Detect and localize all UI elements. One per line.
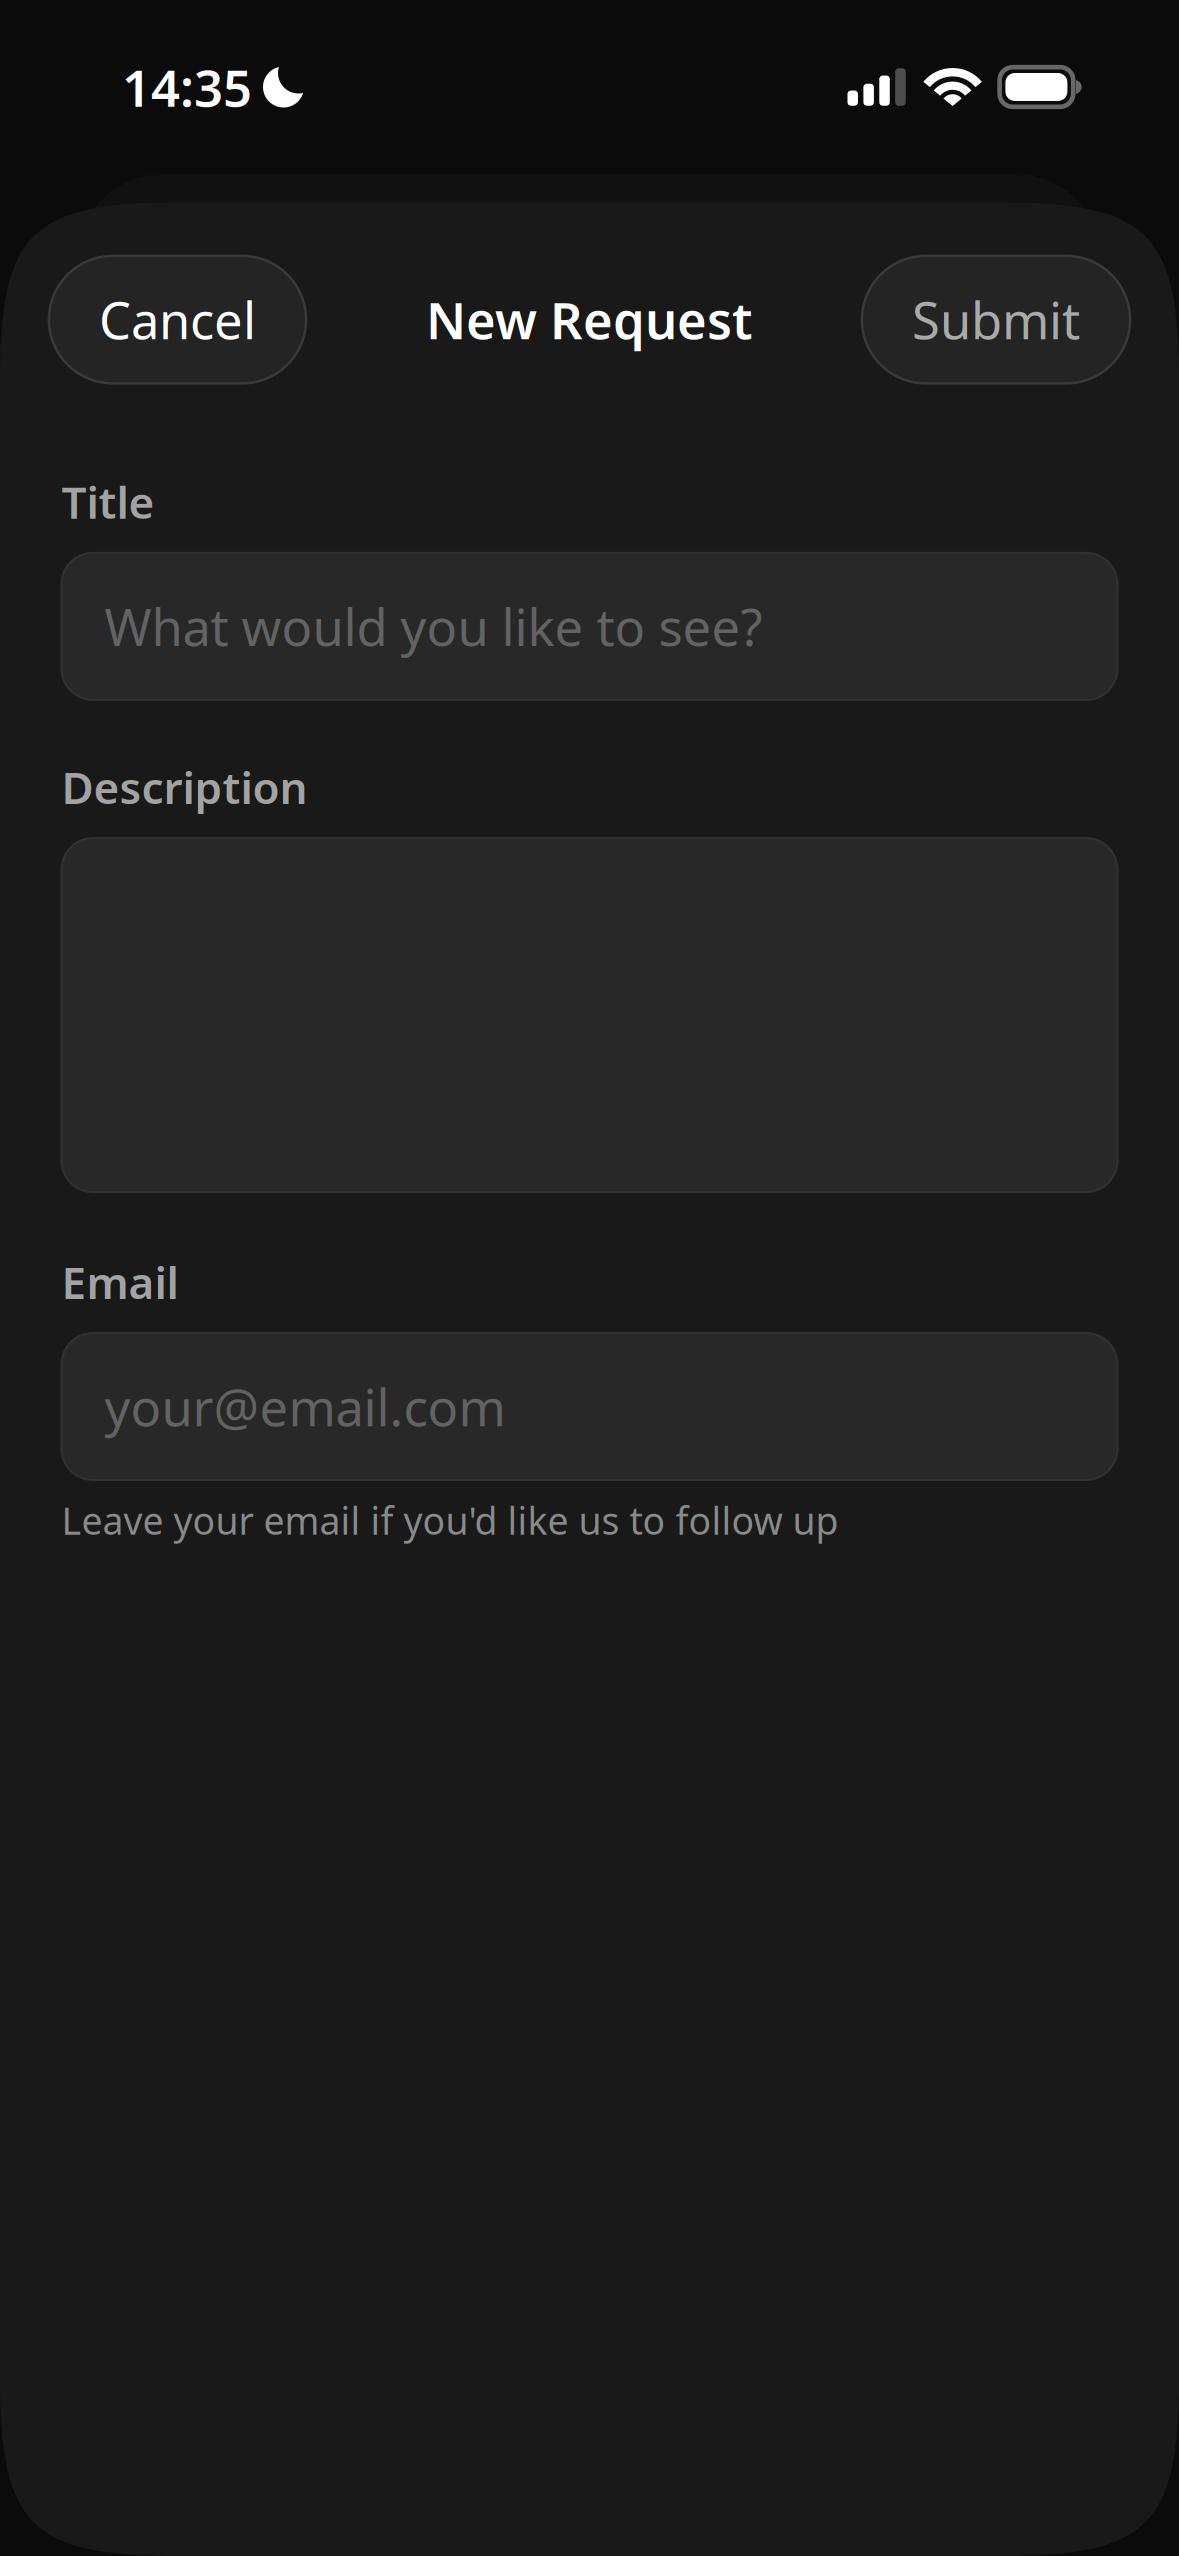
button[interactable]: Title [61, 553, 1117, 700]
button[interactable]: Email [61, 1333, 1117, 1480]
staticText: Email [61, 1253, 178, 1311]
staticText: 14:35 [122, 53, 252, 121]
button[interactable]: Cancel [49, 256, 306, 383]
staticText: Description [61, 758, 307, 816]
button[interactable]: Submit [862, 256, 1130, 383]
staticText: your@email.com [104, 1373, 505, 1440]
staticText: Submit [912, 286, 1080, 353]
staticText: What would you like to see? [104, 593, 762, 660]
staticText: Cancel [99, 286, 256, 353]
staticText: New Request [426, 286, 753, 353]
staticText: Title [61, 472, 154, 531]
staticText: Leave your email if you'd like us to fol… [61, 1496, 838, 1545]
